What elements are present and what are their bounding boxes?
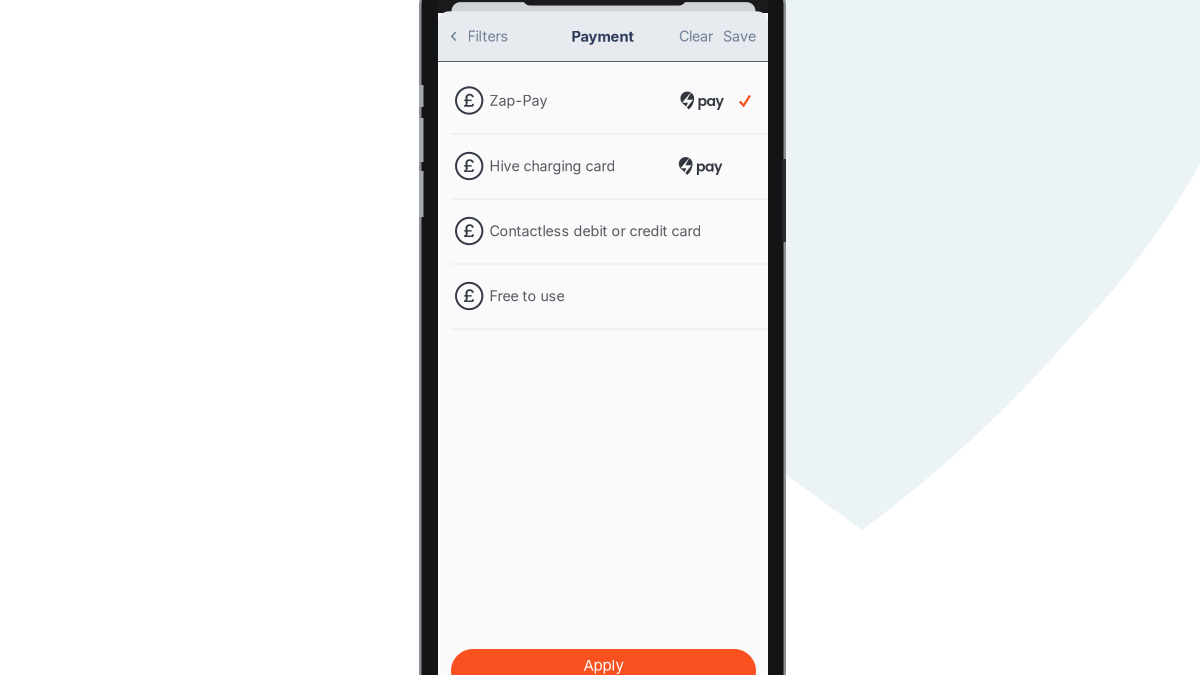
- staticText: Save: [723, 28, 756, 45]
- staticText: Zap-Pay: [489, 92, 547, 109]
- button[interactable]: Save: [718, 11, 768, 61]
- staticText: Payment: [571, 27, 633, 45]
- staticText: pay: [696, 157, 722, 176]
- staticText: £: [463, 284, 475, 307]
- staticText: Apply: [583, 656, 623, 674]
- button[interactable]: Apply: [451, 649, 756, 675]
- button[interactable]: £: [438, 263, 768, 328]
- staticText: Hive charging card: [489, 157, 615, 175]
- staticText: Free to use: [489, 287, 564, 305]
- staticText: Clear: [679, 28, 713, 45]
- staticText: £: [463, 219, 475, 242]
- button[interactable]: Filters: [438, 11, 520, 61]
- staticText: Filters: [467, 28, 508, 45]
- button[interactable]: £: [438, 133, 768, 198]
- button[interactable]: £: [438, 198, 768, 263]
- staticText: £: [463, 89, 475, 111]
- button[interactable]: £: [438, 68, 768, 133]
- staticText: pay: [698, 91, 724, 111]
- staticText: £: [463, 154, 475, 177]
- button[interactable]: Clear: [674, 11, 718, 61]
- staticText: Contactless debit or credit card: [489, 222, 701, 240]
